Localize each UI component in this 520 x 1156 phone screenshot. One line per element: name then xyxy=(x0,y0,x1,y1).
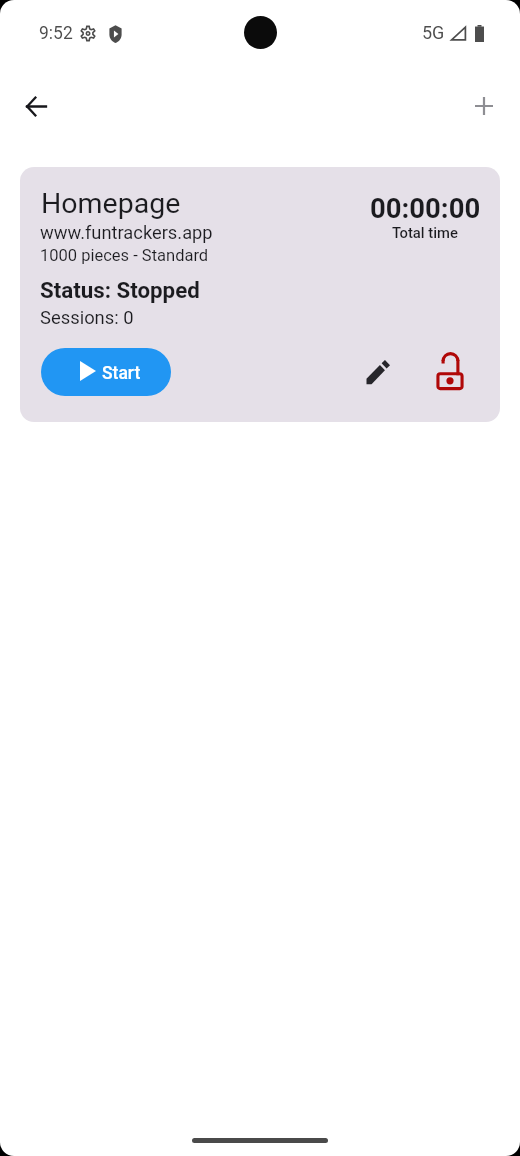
staticText: www.funtrackers.app xyxy=(40,222,213,243)
staticText: Sessions: 0 xyxy=(40,307,134,329)
staticText: 5G xyxy=(422,22,445,43)
button[interactable]: Back xyxy=(12,82,60,130)
button[interactable]: Homepage xyxy=(20,167,500,422)
button[interactable]: Edit xyxy=(356,350,400,394)
staticText: Total time xyxy=(392,224,458,241)
staticText: Start xyxy=(102,363,141,384)
button[interactable]: Start xyxy=(41,348,171,396)
staticText: Homepage xyxy=(41,187,181,220)
staticText: 00:00:00 xyxy=(370,192,481,224)
staticText: 1000 pieces - Standard xyxy=(40,246,209,265)
staticText: Status: Stopped xyxy=(40,277,200,303)
button[interactable]: Unlock xyxy=(428,350,472,394)
staticText: 9:52 xyxy=(39,23,73,44)
button[interactable]: Add xyxy=(460,82,508,130)
